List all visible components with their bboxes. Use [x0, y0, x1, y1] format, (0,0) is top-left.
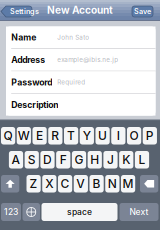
button[interactable]: U [95, 127, 110, 144]
button[interactable]: O [127, 127, 141, 144]
button[interactable]: Address [6, 49, 155, 71]
button[interactable]: N [105, 175, 119, 192]
staticText: Y [83, 128, 91, 143]
staticText: X [45, 176, 53, 191]
button[interactable]: I [111, 127, 125, 144]
button[interactable]: Z [26, 175, 41, 192]
button[interactable]: Description [6, 94, 155, 116]
staticText: New Account [47, 4, 113, 16]
button[interactable]: Y [80, 127, 94, 144]
staticText: Q [4, 128, 13, 143]
button[interactable]: Next keyboard [22, 203, 40, 221]
staticText: J [107, 152, 114, 167]
button[interactable]: Shift [1, 175, 19, 192]
staticText: O [130, 128, 139, 143]
staticText: Password [11, 77, 52, 87]
button[interactable]: Numbers [1, 203, 21, 221]
staticText: V [76, 176, 85, 191]
staticText: G [74, 152, 83, 167]
staticText: Save [134, 7, 151, 16]
button[interactable]: J [103, 151, 118, 168]
button[interactable]: B [89, 175, 104, 192]
button[interactable]: W [17, 127, 31, 144]
staticText: space [67, 207, 92, 217]
staticText: S [28, 152, 36, 167]
staticText: C [61, 176, 70, 191]
button[interactable]: K [119, 151, 133, 168]
button[interactable]: V [74, 175, 88, 192]
staticText: R [51, 128, 59, 143]
staticText: U [98, 128, 107, 143]
button[interactable]: L [135, 151, 149, 168]
button[interactable]: Q [1, 127, 15, 144]
button[interactable]: Settings [1, 6, 32, 17]
staticText: K [122, 152, 130, 167]
staticText: Address [11, 55, 45, 65]
button[interactable]: D [40, 151, 55, 168]
staticText: D [43, 152, 52, 167]
staticText: Next [129, 207, 148, 217]
staticText: E [36, 128, 43, 143]
button[interactable]: F [56, 151, 70, 168]
button[interactable]: C [58, 175, 72, 192]
button[interactable]: P [143, 127, 157, 144]
button[interactable]: E [32, 127, 47, 144]
staticText: B [93, 176, 101, 191]
button[interactable]: M [121, 175, 135, 192]
staticText: I [117, 128, 120, 143]
staticText: F [60, 152, 67, 167]
button[interactable]: Password [6, 71, 155, 93]
button[interactable]: X [42, 175, 56, 192]
staticText: M [123, 176, 134, 191]
button[interactable]: S [25, 151, 39, 168]
button[interactable]: T [64, 127, 78, 144]
staticText: Settings [10, 7, 39, 16]
staticText: example@ibis.ne.jp [57, 56, 118, 64]
staticText: Z [30, 176, 38, 191]
button[interactable]: Name [6, 26, 155, 48]
staticText: T [67, 128, 75, 143]
staticText: Description [11, 99, 58, 110]
staticText: Required [57, 78, 85, 86]
button[interactable]: space [41, 203, 117, 221]
button[interactable]: A [9, 151, 23, 168]
staticText: L [138, 152, 145, 167]
staticText: W [18, 128, 30, 143]
staticText: N [108, 176, 117, 191]
staticText: H [90, 152, 99, 167]
staticText: Name [11, 32, 36, 43]
button[interactable]: Save [132, 6, 153, 17]
staticText: A [11, 152, 20, 167]
staticText: John Sato [57, 34, 89, 41]
button[interactable]: Delete [140, 175, 158, 192]
staticText: P [146, 128, 154, 143]
button[interactable]: G [72, 151, 86, 168]
button[interactable]: R [48, 127, 62, 144]
button[interactable]: Next [119, 203, 158, 221]
staticText: 123 [4, 207, 18, 217]
button[interactable]: H [88, 151, 102, 168]
